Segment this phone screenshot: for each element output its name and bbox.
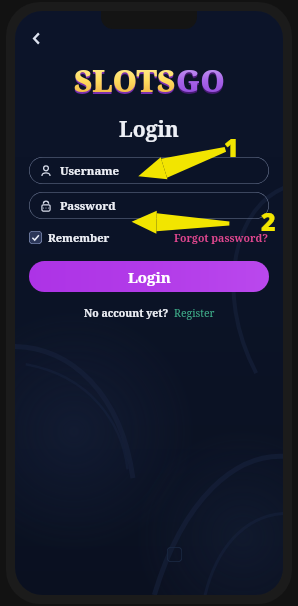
staticText: GO [176, 60, 225, 101]
staticText: Register [174, 306, 215, 320]
staticText: Login [128, 267, 171, 287]
button[interactable]: Back [20, 22, 52, 54]
staticText: Remember [48, 230, 110, 245]
button[interactable]: Remember [29, 228, 110, 247]
staticText: SLOTS [74, 62, 176, 103]
staticText: 2 [261, 204, 276, 238]
staticText: No account yet? [84, 306, 169, 320]
staticText: SLOTS [74, 60, 176, 101]
staticText: Username [60, 163, 120, 179]
staticText: Password [60, 198, 116, 214]
button[interactable]: Recent apps [167, 547, 182, 562]
button[interactable]: Register [174, 304, 215, 322]
button[interactable]: Password [29, 192, 269, 219]
button[interactable]: Username [29, 157, 269, 184]
staticText: 1 [224, 130, 239, 164]
button[interactable]: Login [29, 261, 269, 292]
button[interactable]: Forgot password? [174, 229, 269, 247]
staticText: Login [119, 115, 179, 144]
staticText: GO [176, 62, 225, 103]
staticText: Forgot password? [174, 231, 269, 245]
